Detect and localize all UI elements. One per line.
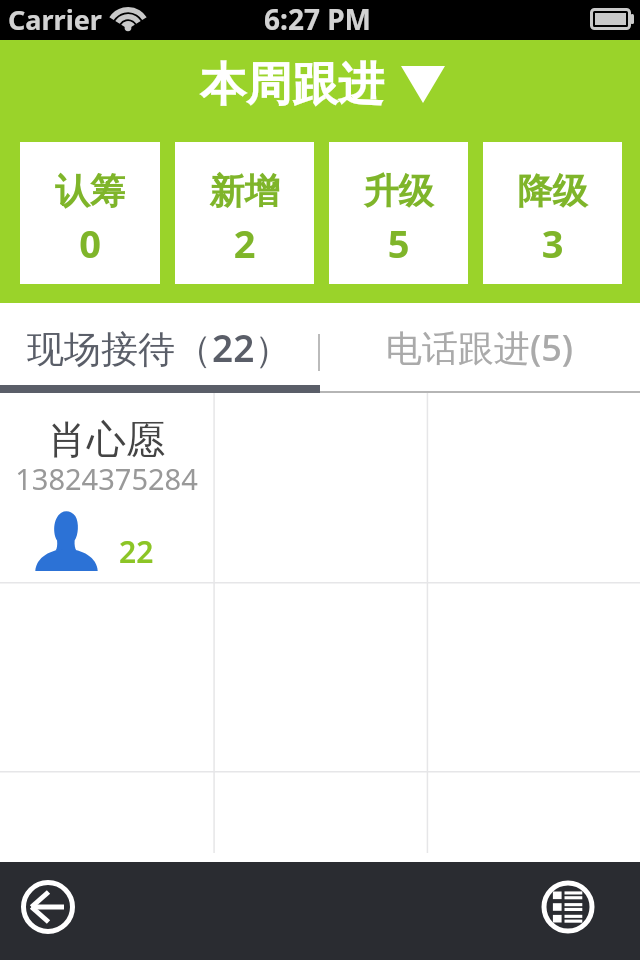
staticText: 6:27 PM	[264, 0, 371, 38]
staticText: 认筹	[20, 169, 160, 213]
staticText: 2	[175, 217, 314, 269]
button[interactable]: Empty cell	[0, 771, 214, 862]
staticText: 3	[483, 217, 622, 269]
staticText: 降级	[483, 169, 622, 213]
staticText: 5	[329, 217, 468, 269]
staticText: 现场接待（22）	[27, 322, 292, 373]
staticText: 升级	[329, 169, 468, 213]
button[interactable]: 升级	[329, 142, 468, 284]
staticText: 肖心愿	[0, 415, 213, 464]
button[interactable]: 现场接待（22）	[0, 303, 320, 393]
staticText: 新增	[175, 169, 314, 213]
staticText: 22	[119, 531, 154, 572]
button[interactable]: 认筹	[20, 142, 160, 284]
button[interactable]: 肖心愿 13824375284	[0, 393, 214, 582]
button[interactable]: List view	[540, 879, 596, 935]
staticText: 0	[20, 217, 160, 269]
button[interactable]: 电话跟进(5)	[320, 303, 640, 393]
staticText: 电话跟进(5)	[386, 323, 574, 372]
button[interactable]: Empty cell	[214, 771, 427, 862]
button[interactable]: 降级	[483, 142, 622, 284]
staticText: 13824375284	[0, 459, 213, 498]
button[interactable]: Empty cell	[427, 771, 640, 862]
staticText: Carrier	[8, 1, 102, 38]
button[interactable]: Back	[20, 879, 76, 935]
button[interactable]: 新增	[175, 142, 314, 284]
staticText: 本周跟进	[200, 56, 384, 114]
